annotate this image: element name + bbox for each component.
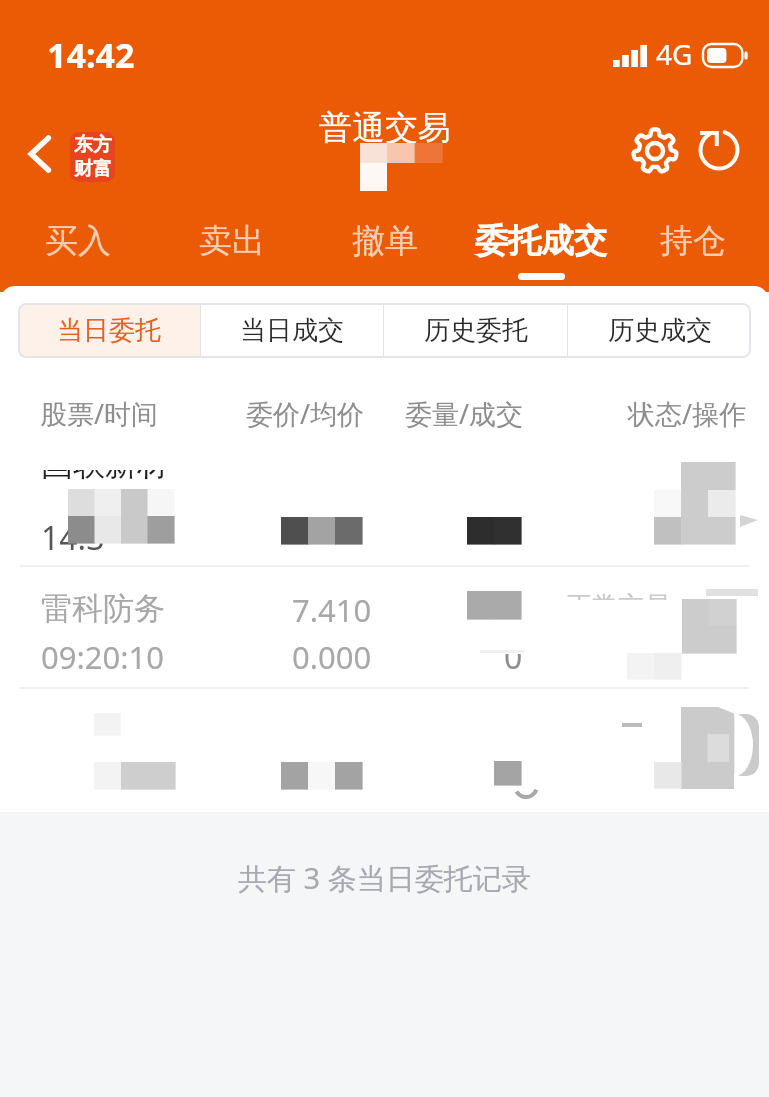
button[interactable]: 卖出 [182, 202, 282, 292]
staticText: 普通交易 [319, 107, 451, 149]
staticText: 股票/时间 [40, 395, 159, 432]
staticText: 当日委托 [57, 314, 161, 347]
button[interactable]: 历史成交 [568, 303, 751, 358]
staticText: 财富 [74, 157, 112, 181]
staticText: 4G [656, 35, 693, 73]
staticText: 14:3 [41, 516, 105, 560]
staticText: 0 [504, 635, 523, 679]
button[interactable]: Refresh [689, 120, 749, 180]
staticText: 当日成交 [240, 314, 344, 347]
staticText: 委托成交 [475, 220, 607, 262]
staticText: 共有 3 条当日委托记录 [238, 858, 531, 898]
button[interactable]: 历史委托 [384, 303, 567, 358]
staticText: 撤单 [352, 220, 418, 262]
button[interactable]: 委托成交 [461, 202, 621, 292]
button[interactable]: 持仓 [643, 202, 743, 292]
staticText: 东方 [74, 133, 112, 157]
button[interactable]: 撤单 [335, 202, 435, 292]
button[interactable]: 东方 [70, 132, 115, 182]
button[interactable]: 当日委托 [18, 303, 200, 358]
staticText: 09:20:10 [41, 636, 165, 678]
button[interactable]: 买入 [28, 202, 128, 292]
staticText: 0.000 [292, 636, 372, 678]
staticText: 卖出 [199, 220, 265, 262]
button[interactable]: 当日成交 [201, 303, 383, 358]
staticText: 正常交易 [566, 590, 670, 623]
staticText: 历史委托 [424, 314, 528, 347]
staticText: 历史成交 [608, 314, 712, 347]
staticText: 持仓 [660, 220, 726, 262]
staticText: 委价/均价 [246, 395, 365, 432]
staticText: 14:42 [47, 32, 135, 78]
staticText: 委量/成交 [405, 395, 524, 432]
button[interactable]: Back [10, 120, 70, 188]
staticText: 买入 [45, 220, 111, 262]
staticText: 国联新材 [41, 444, 169, 484]
staticText: 7.410 [292, 589, 372, 631]
button[interactable]: Settings [624, 120, 685, 181]
staticText: 状态/操作 [628, 395, 747, 432]
staticText: 雷科防务 [41, 589, 165, 628]
